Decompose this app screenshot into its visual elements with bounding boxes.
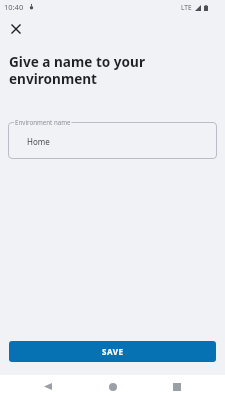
staticText: LTE [181,3,192,12]
button[interactable]: Close [3,16,28,41]
button[interactable]: Home [98,374,127,399]
button[interactable]: Recent apps [162,374,191,399]
staticText: Environment name [15,118,71,126]
staticText: Give a name to your environment [9,52,159,88]
button[interactable]: SAVE [9,341,216,362]
button[interactable]: Back [33,374,62,399]
staticText: Home [27,136,50,147]
staticText: SAVE [102,346,124,357]
staticText: 10:40 [4,2,24,12]
button[interactable]: Environment name [8,122,217,159]
